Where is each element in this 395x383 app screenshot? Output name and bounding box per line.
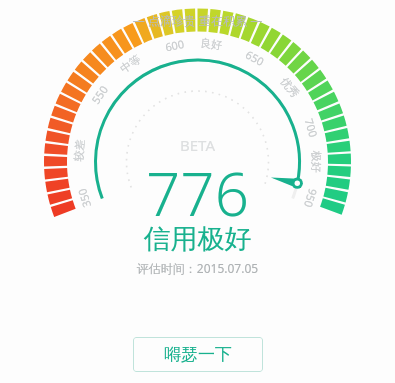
staticText: BETA bbox=[0, 135, 395, 383]
staticText: 嘚瑟一下 bbox=[164, 344, 232, 365]
staticText: 评估时间：2015.07.05 bbox=[0, 260, 395, 383]
staticText: — 点滴珍贵 重在积累 — bbox=[0, 12, 395, 383]
staticText: 信用极好 bbox=[0, 222, 395, 383]
button[interactable]: 嘚瑟一下 bbox=[133, 337, 263, 372]
staticText: 776 bbox=[0, 152, 395, 383]
